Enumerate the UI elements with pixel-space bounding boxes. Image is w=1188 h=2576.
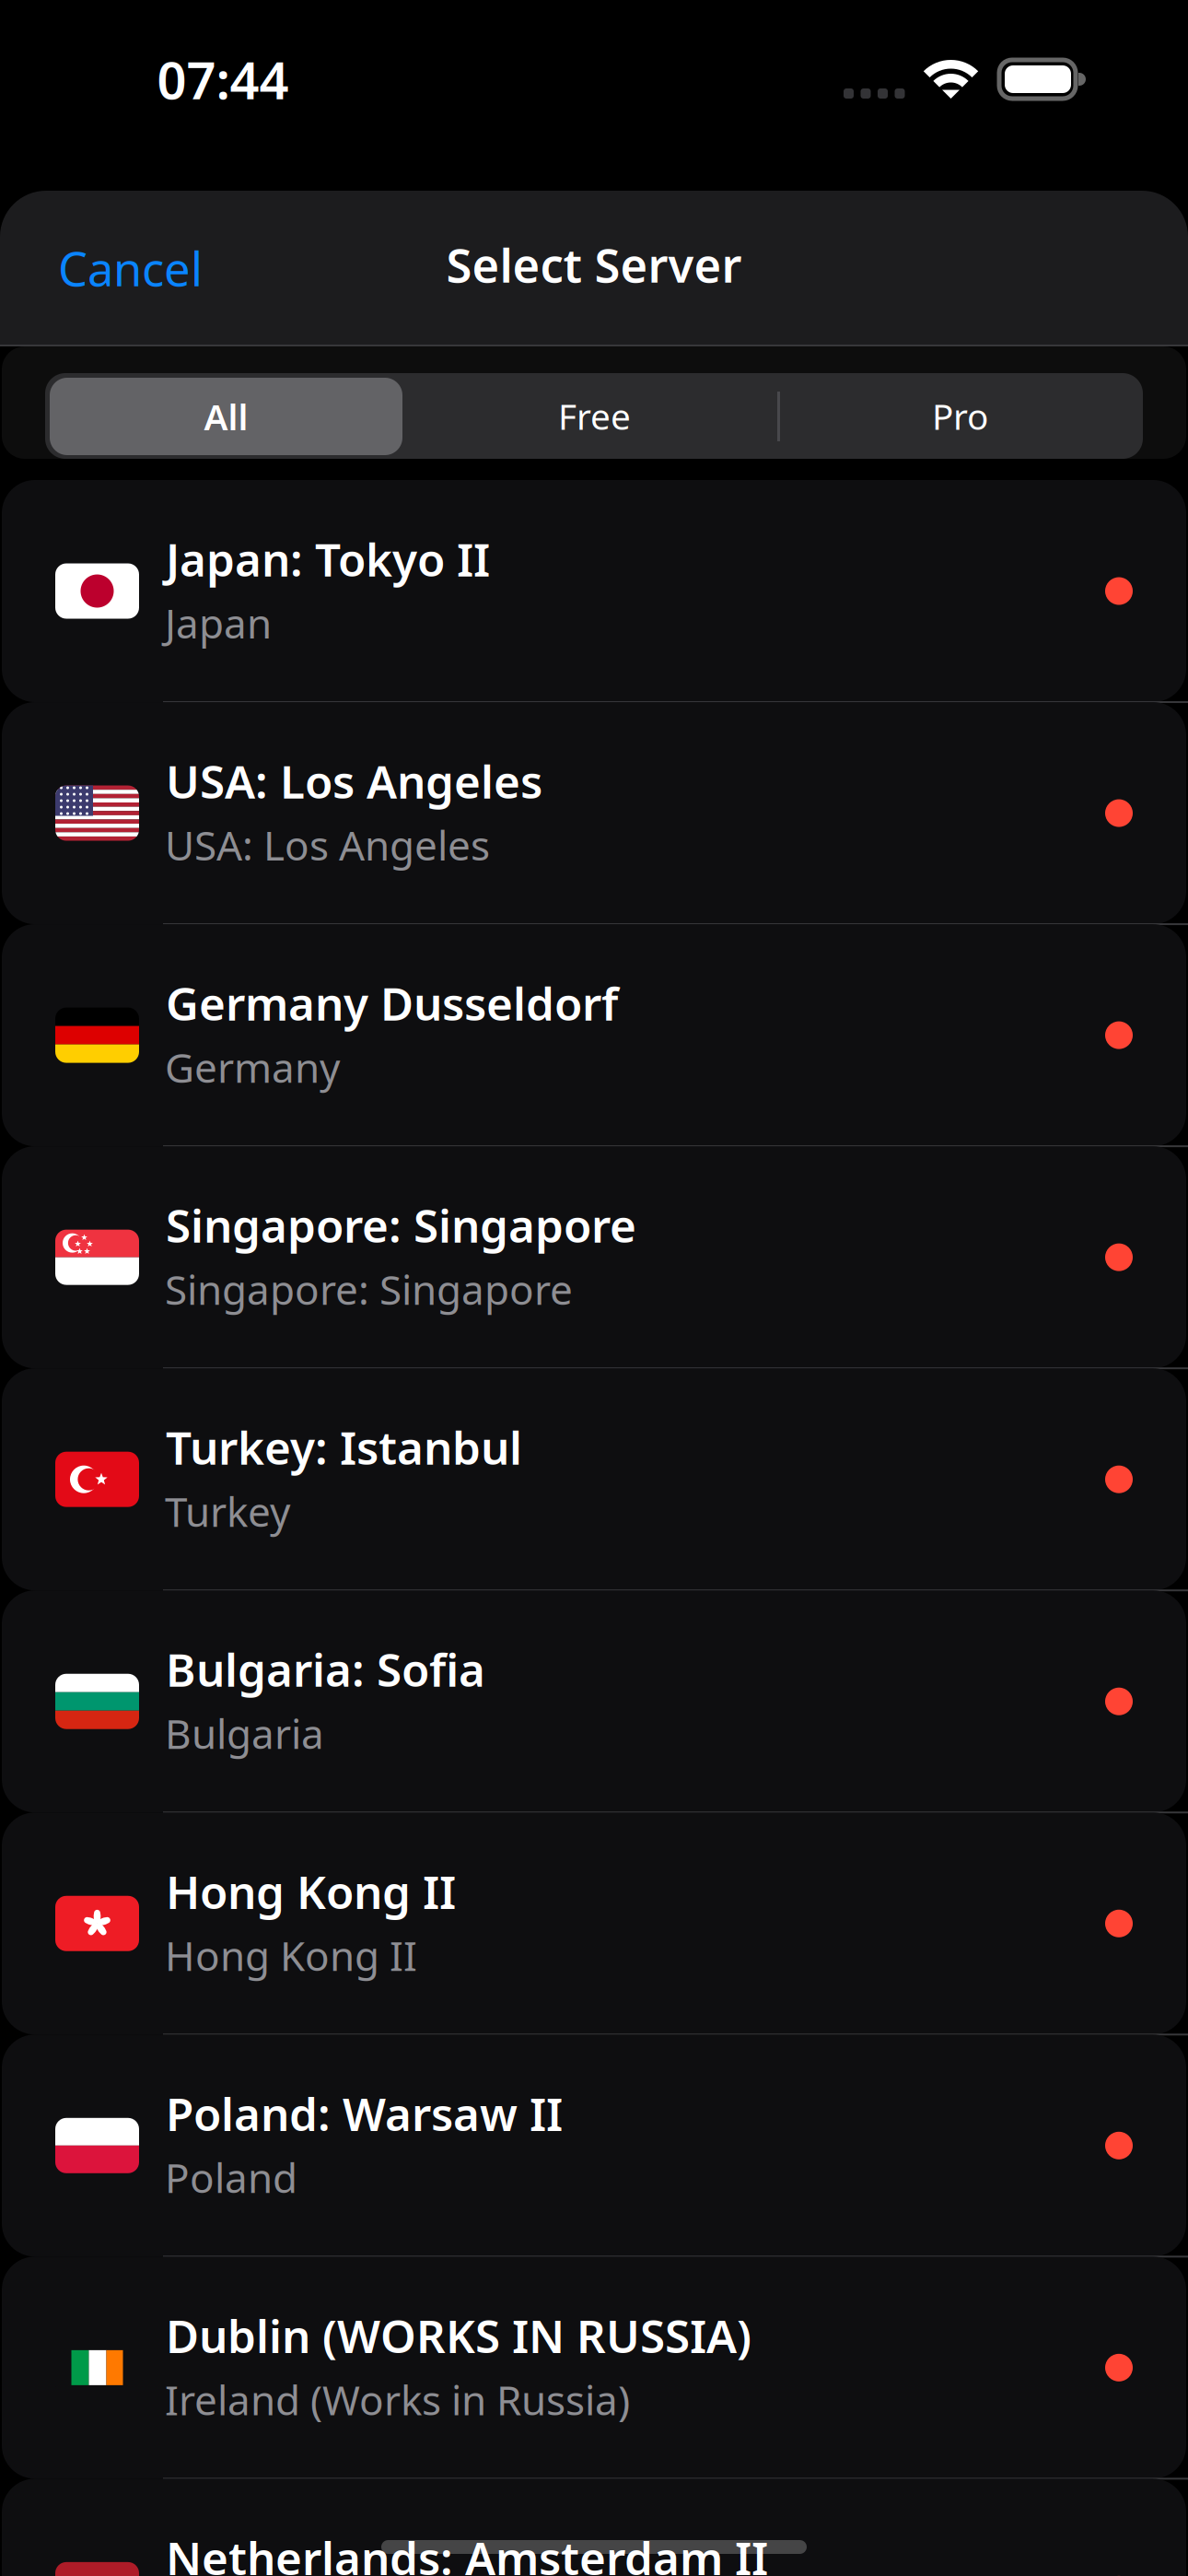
staticText: Pro <box>932 392 988 440</box>
staticText: USA: Los Angeles <box>166 751 542 811</box>
staticText: Japan: Tokyo II <box>166 529 490 589</box>
staticText: Turkey <box>165 1484 290 1538</box>
staticText: USA: Los Angeles <box>165 818 490 872</box>
button[interactable]: Dublin (WORKS IN RUSSIA) <box>2 2257 1186 2479</box>
staticText: Singapore: Singapore <box>165 1262 573 1316</box>
staticText: Cancel <box>58 237 203 299</box>
staticText: Free <box>558 392 631 440</box>
button[interactable]: Japan: Tokyo II <box>2 480 1186 702</box>
button[interactable]: Turkey: Istanbul <box>2 1368 1186 1590</box>
staticText: Japan <box>165 596 272 650</box>
button[interactable]: Poland: Warsaw II <box>2 2035 1186 2257</box>
staticText: Dublin (WORKS IN RUSSIA) <box>166 2305 751 2366</box>
staticText: Singapore: Singapore <box>166 1195 636 1255</box>
button[interactable]: Hong Kong II <box>2 1812 1186 2034</box>
button[interactable]: Singapore: Singapore <box>2 1146 1186 1368</box>
staticText: Bulgaria: Sofia <box>166 1639 485 1699</box>
staticText: Turkey: Istanbul <box>166 1417 522 1477</box>
button[interactable]: Germany Dusseldorf <box>2 924 1186 1146</box>
button[interactable]: Cancel <box>58 222 297 314</box>
staticText: Hong Kong II <box>165 1928 417 1982</box>
staticText: Select Server <box>446 233 742 295</box>
staticText: Netherlands: Amsterdam II <box>166 2527 768 2576</box>
staticText: 07:44 <box>157 45 289 114</box>
staticText: Poland: Warsaw II <box>166 2083 563 2143</box>
button[interactable]: Bulgaria: Sofia <box>2 1590 1186 1812</box>
staticText: Poland <box>165 2150 297 2204</box>
staticText: Hong Kong II <box>166 1861 456 1921</box>
staticText: Germany Dusseldorf <box>166 973 618 1033</box>
staticText: Germany <box>165 1040 340 1094</box>
button[interactable]: Free <box>412 378 777 454</box>
staticText: All <box>204 393 248 440</box>
staticText: Bulgaria <box>165 1706 324 1760</box>
staticText: Ireland (Works in Russia) <box>165 2372 630 2426</box>
button[interactable]: USA: Los Angeles <box>2 702 1186 924</box>
button[interactable]: Netherlands: Amsterdam II <box>2 2479 1186 2576</box>
button[interactable]: Pro <box>777 378 1143 454</box>
button[interactable]: All <box>50 378 402 455</box>
